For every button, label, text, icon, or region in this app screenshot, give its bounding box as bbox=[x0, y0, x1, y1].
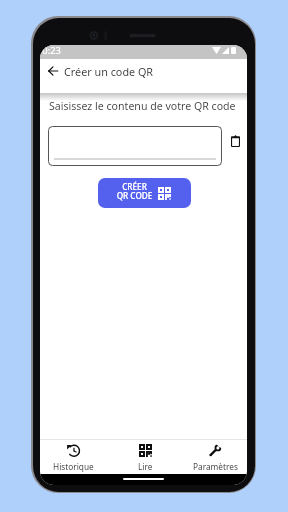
staticText: Paramètres bbox=[193, 461, 238, 472]
staticText: Créer un code QR bbox=[64, 64, 154, 79]
staticText: CRÉER bbox=[116, 181, 153, 192]
button[interactable]: CRÉER bbox=[98, 178, 191, 208]
staticText: Historique bbox=[53, 461, 94, 472]
button[interactable]: Lire bbox=[115, 440, 175, 472]
staticText: Saisissez le contenu de votre QR code bbox=[49, 99, 236, 113]
button[interactable]: Retour bbox=[43, 61, 63, 81]
button[interactable]: Coller bbox=[231, 135, 240, 147]
button[interactable]: Paramètres bbox=[185, 440, 245, 472]
button[interactable]: Historique bbox=[43, 440, 103, 472]
staticText: 10:23 bbox=[40, 45, 61, 57]
button[interactable] bbox=[48, 126, 222, 166]
staticText: Lire bbox=[138, 461, 153, 472]
staticText: QR CODE bbox=[116, 190, 153, 201]
